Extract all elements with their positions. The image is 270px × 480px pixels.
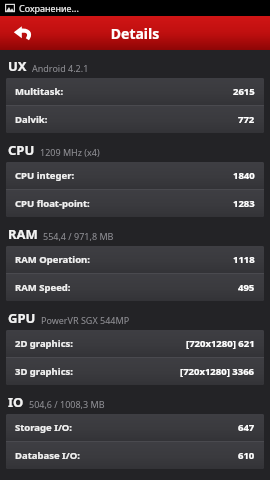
staticText: [720x1280] 3366 (180, 365, 255, 378)
staticText: 1283 (233, 197, 255, 210)
staticText: Details (0, 24, 270, 43)
staticText: CPU integer: (15, 169, 75, 182)
staticText: Multitask: (15, 85, 64, 98)
staticText: 504,6 / 1008,3 MB (29, 398, 105, 410)
staticText: Dalvik: (15, 113, 48, 126)
button[interactable]: Back (6, 16, 40, 50)
staticText: CPU (8, 141, 35, 159)
staticText: 772 (238, 113, 255, 126)
staticText: UX (8, 57, 27, 75)
staticText: RAM Operation: (15, 253, 90, 266)
staticText: Database I/O: (15, 449, 80, 462)
button[interactable]: 2D graphics: (6, 330, 264, 357)
button[interactable]: Storage I/O: (6, 414, 264, 441)
staticText: 2615 (233, 85, 255, 98)
staticText: RAM (8, 225, 38, 243)
staticText: Сохранение... (19, 2, 79, 14)
staticText: 610 (238, 449, 255, 462)
staticText: [720x1280] 621 (186, 337, 255, 350)
staticText: 554,4 / 971,8 MB (43, 230, 114, 242)
button[interactable]: Dalvik: (6, 106, 264, 133)
staticText: 1840 (233, 169, 255, 182)
other: Screenshot saved (5, 3, 15, 13)
staticText: 1118 (233, 253, 255, 266)
staticText: RAM Speed: (15, 281, 71, 294)
button[interactable]: CPU float-point: (6, 190, 264, 217)
staticText: PowerVR SGX 544MP (41, 314, 130, 326)
staticText: 3D graphics: (15, 365, 73, 378)
staticText: CPU float-point: (15, 197, 90, 210)
staticText: 495 (238, 281, 255, 294)
button[interactable]: Database I/O: (6, 442, 264, 469)
button[interactable]: 3D graphics: (6, 358, 264, 385)
button[interactable]: RAM Operation: (6, 246, 264, 273)
button[interactable]: CPU integer: (6, 162, 264, 189)
staticText: 647 (238, 421, 255, 434)
staticText: GPU (8, 309, 36, 327)
staticText: 1209 MHz (x4) (40, 146, 100, 158)
staticText: 2D graphics: (15, 337, 73, 350)
staticText: Android 4.2.1 (32, 62, 89, 74)
button[interactable]: Multitask: (6, 78, 264, 105)
staticText: IO (8, 393, 24, 411)
button[interactable]: RAM Speed: (6, 274, 264, 301)
staticText: Storage I/O: (15, 421, 73, 434)
